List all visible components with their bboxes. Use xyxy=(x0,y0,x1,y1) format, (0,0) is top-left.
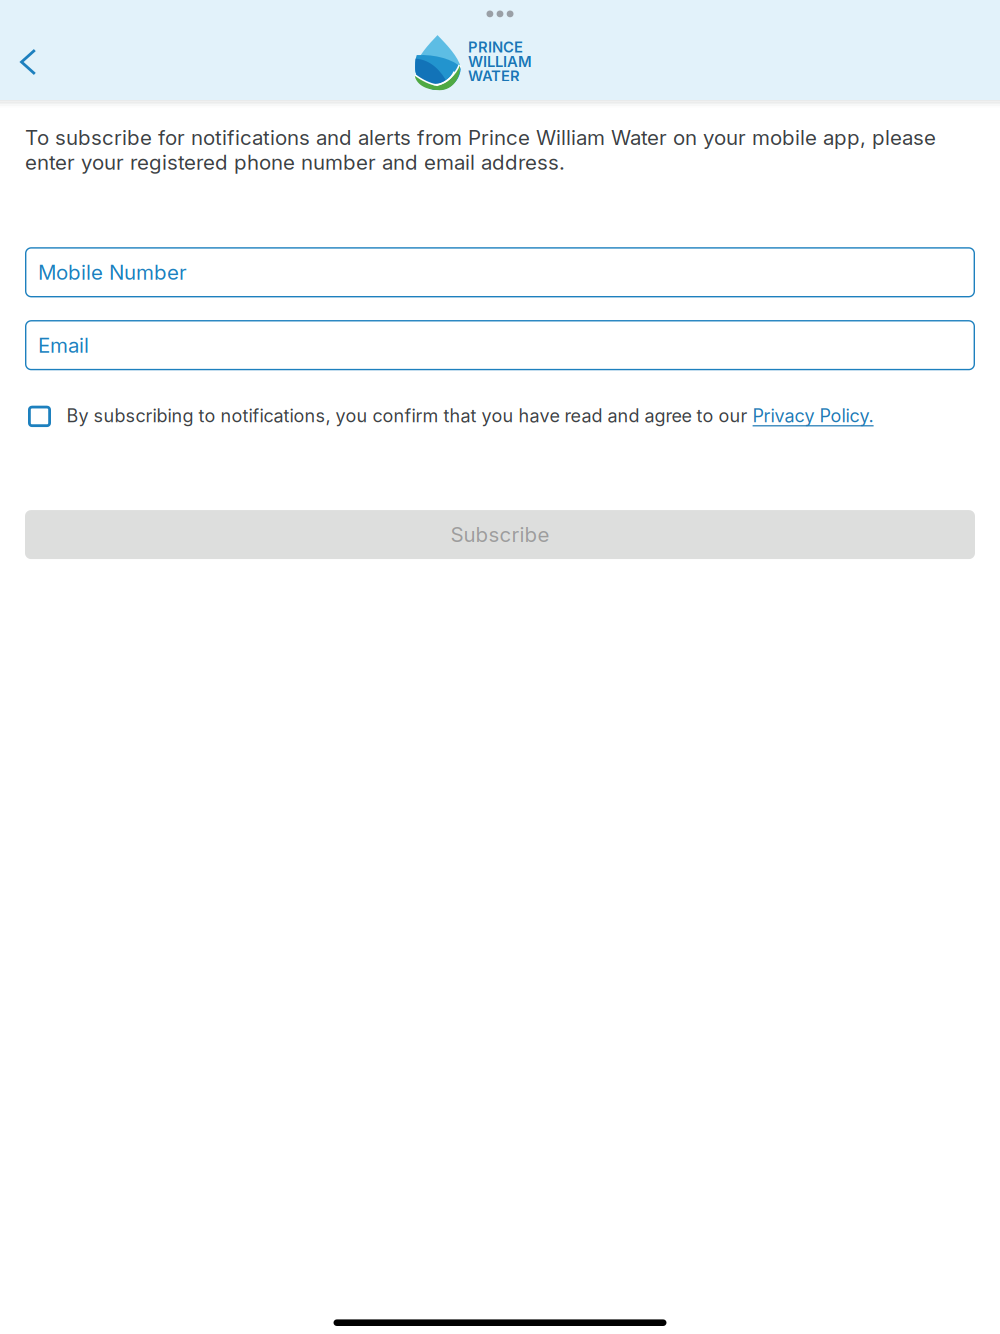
staticText: PRINCE xyxy=(468,38,523,56)
staticText: WILLIAM xyxy=(468,53,532,70)
button[interactable]: Email xyxy=(25,320,975,370)
staticText: WATER xyxy=(468,67,520,85)
button[interactable]: Back xyxy=(0,34,56,90)
button[interactable]: By subscribing to notifications, you con… xyxy=(25,405,975,427)
button[interactable]: Mobile Number xyxy=(25,247,975,297)
staticText: By subscribing to notifications, you con… xyxy=(67,405,753,426)
staticText: Privacy Policy. xyxy=(753,405,874,426)
staticText: Subscribe xyxy=(450,522,549,547)
staticText: Mobile Number xyxy=(38,260,187,285)
staticText: Email xyxy=(38,333,89,358)
button[interactable]: Subscribe xyxy=(25,510,975,559)
staticText: To subscribe for notifications and alert… xyxy=(25,125,936,175)
